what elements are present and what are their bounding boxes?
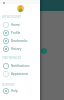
button[interactable]: Appearance [0,70,40,78]
button[interactable]: Profile [0,29,40,37]
button[interactable]: Help [0,87,40,95]
button[interactable]: Notifications [0,62,40,70]
staticText: MY ACCOUNT [2,15,21,19]
staticText: SUPPORT [2,83,15,87]
button[interactable]: Add [41,48,47,54]
button[interactable]: Bookmarks [0,37,40,45]
staticText: Home [11,23,20,27]
button[interactable]: History [0,45,40,53]
staticText: Notifications [11,64,30,68]
staticText: Bookmarks [11,39,28,43]
button[interactable]: Home [0,21,40,29]
staticText: Help [11,89,18,93]
staticText: Appearance [11,72,29,76]
staticText: Profile [11,31,21,35]
staticText: PREFERENCES [2,56,22,60]
staticText: History [11,47,22,51]
